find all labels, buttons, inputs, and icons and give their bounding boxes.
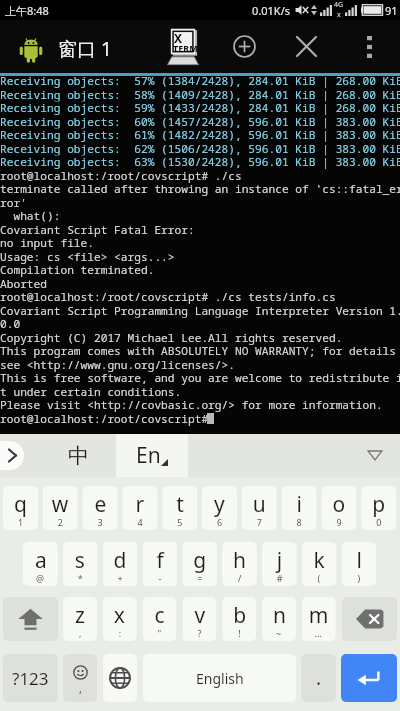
- button[interactable]: w: [43, 486, 78, 530]
- staticText: s: [75, 546, 86, 575]
- button[interactable]: g: [182, 542, 217, 586]
- button[interactable]: z: [63, 597, 97, 641]
- staticText: g: [193, 546, 206, 575]
- button[interactable]: New window: [222, 20, 266, 73]
- button[interactable]: Shift: [3, 597, 58, 641]
- staticText: …: [315, 627, 323, 639]
- button[interactable]: Change input language: [103, 654, 137, 702]
- button[interactable]: Emoji: [63, 654, 97, 702]
- staticText: p: [372, 490, 385, 519]
- staticText: v: [194, 601, 205, 630]
- button[interactable]: l: [341, 542, 376, 586]
- button[interactable]: Expand toolbar: [0, 434, 36, 477]
- staticText: Receiving objects: 61% (1482/2428), 596.…: [0, 127, 400, 142]
- button[interactable]: f: [142, 542, 177, 586]
- staticText: Receiving objects: 60% (1457/2428), 596.…: [0, 114, 400, 129]
- staticText: no input file.: [0, 235, 94, 250]
- button[interactable]: b: [222, 597, 256, 641]
- button[interactable]: i: [282, 486, 317, 530]
- staticText: t: [176, 490, 184, 519]
- staticText: 5: [177, 516, 183, 528]
- staticText: Receiving objects: 57% (1384/2428), 284.…: [0, 73, 400, 88]
- button[interactable]: English: [143, 654, 296, 702]
- staticText: Please visit <http://covbasic.org/> for …: [0, 397, 383, 412]
- button[interactable]: XTerm: [159, 20, 207, 73]
- button[interactable]: More options: [347, 20, 391, 73]
- button[interactable]: c: [143, 597, 177, 641]
- button[interactable]: v: [182, 597, 216, 641]
- button[interactable]: o: [321, 486, 356, 530]
- button[interactable]: Close window: [284, 20, 328, 73]
- staticText: f: [156, 546, 164, 575]
- staticText: ): [357, 572, 360, 584]
- staticText: Usage: cs <file> <args...>: [0, 249, 175, 264]
- staticText: !: [238, 627, 241, 639]
- staticText: x: [337, 10, 341, 20]
- staticText: e: [95, 490, 107, 519]
- staticText: b: [233, 601, 246, 630]
- button[interactable]: r: [122, 486, 157, 530]
- staticText: *: [78, 572, 83, 584]
- button[interactable]: q: [3, 486, 38, 530]
- button[interactable]: y: [202, 486, 237, 530]
- staticText: Compilation terminated.: [0, 262, 155, 277]
- staticText: y: [214, 490, 225, 519]
- staticText: c: [155, 601, 166, 630]
- button[interactable]: m: [302, 597, 336, 641]
- button[interactable]: j: [262, 542, 297, 586]
- button[interactable]: 窗口 1: [0, 20, 135, 73]
- staticText: X: [174, 30, 183, 46]
- button[interactable]: p: [361, 486, 396, 530]
- staticText: o: [332, 490, 345, 519]
- staticText: Receiving objects: 58% (1409/2428), 284.…: [0, 86, 400, 101]
- button[interactable]: s: [63, 542, 98, 586]
- button[interactable]: x: [103, 597, 137, 641]
- staticText: r: [135, 490, 144, 519]
- button[interactable]: Backspace: [342, 597, 397, 641]
- staticText: #: [277, 572, 283, 584]
- button[interactable]: En: [116, 434, 188, 477]
- button[interactable]: ?123: [3, 654, 58, 702]
- button[interactable]: 中: [44, 434, 112, 477]
- button[interactable]: Enter: [341, 654, 397, 702]
- staticText: =: [197, 572, 203, 584]
- staticText: Covariant Script Programming Language In…: [0, 303, 400, 318]
- staticText: ?123: [12, 667, 49, 690]
- staticText: 9: [336, 516, 342, 528]
- button[interactable]: e: [83, 486, 118, 530]
- staticText: /: [238, 572, 242, 584]
- staticText: Aborted: [0, 276, 47, 291]
- button[interactable]: n: [262, 597, 296, 641]
- button[interactable]: a: [23, 542, 58, 586]
- button[interactable]: .: [301, 654, 336, 702]
- staticText: Covariant Script Fatal Error:: [0, 222, 195, 237]
- button[interactable]: u: [242, 486, 277, 530]
- staticText: see <http://www.gnu.org/licenses/>.: [0, 357, 235, 372]
- staticText: 上午8:48: [5, 3, 49, 18]
- staticText: n: [273, 601, 286, 630]
- staticText: d: [114, 546, 127, 575]
- staticText: 2: [58, 516, 64, 528]
- button[interactable]: k: [302, 542, 337, 586]
- staticText: 91: [385, 3, 398, 18]
- staticText: i: [297, 490, 303, 519]
- staticText: English: [196, 669, 244, 688]
- button[interactable]: d: [103, 542, 138, 586]
- staticText: .: [316, 665, 322, 691]
- staticText: ,: [79, 681, 82, 696]
- staticText: ?: [197, 627, 201, 639]
- button[interactable]: h: [222, 542, 257, 586]
- staticText: a: [35, 546, 47, 575]
- staticText: TERM: [173, 42, 198, 54]
- button[interactable]: Hide keyboard: [188, 434, 400, 477]
- staticText: u: [253, 490, 266, 519]
- button[interactable]: t: [162, 486, 197, 530]
- staticText: 4: [137, 516, 143, 528]
- staticText: 7: [257, 516, 263, 528]
- staticText: 窗口 1: [58, 36, 112, 62]
- staticText: l: [356, 546, 362, 575]
- staticText: 0: [376, 516, 382, 528]
- staticText: z: [75, 601, 85, 630]
- staticText: This program comes with ABSOLUTELY NO WA…: [0, 343, 397, 358]
- staticText: root@localhost:/root/covscript#: [0, 411, 215, 426]
